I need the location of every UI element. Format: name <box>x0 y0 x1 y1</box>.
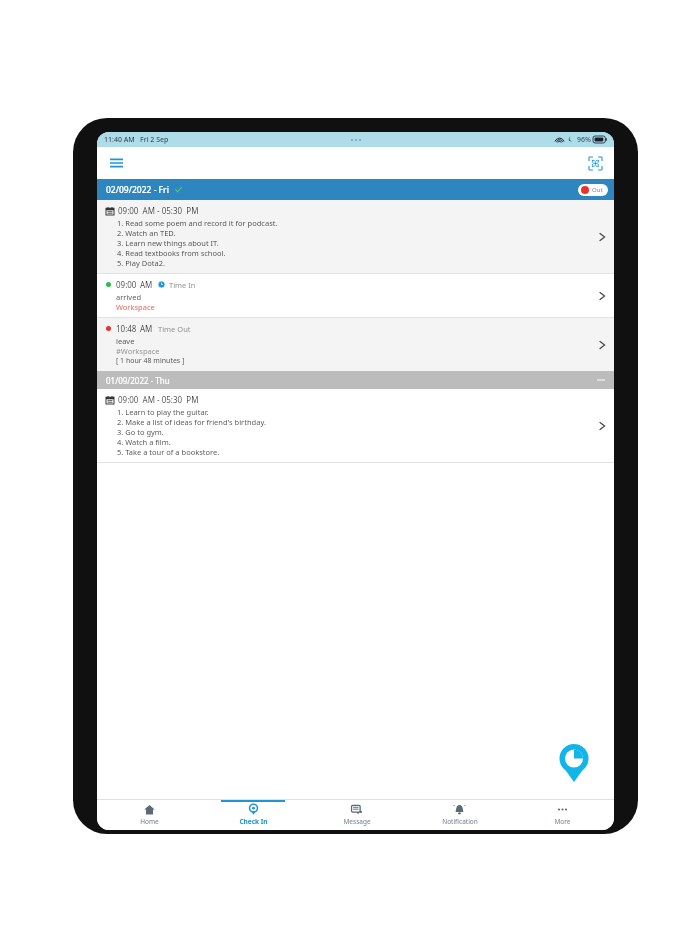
staticText: 4. Watch a film. <box>117 437 171 447</box>
button[interactable]: 09:00 <box>97 274 614 317</box>
staticText: 02/09/2022 - Fri <box>106 184 169 196</box>
staticText: 11:40 AM <box>104 135 135 145</box>
staticText: 01/09/2022 - Thu <box>106 375 170 386</box>
button[interactable]: Check In <box>201 800 305 830</box>
button[interactable]: More <box>511 800 614 830</box>
button[interactable]: Check in location <box>552 741 596 785</box>
staticText: 2. Make a list of ideas for friend's bir… <box>117 417 266 427</box>
staticText: leave <box>116 336 135 346</box>
staticText: Notification <box>442 817 478 826</box>
staticText: 5. Play Dota2. <box>117 258 165 268</box>
staticText: 09:00 AM - 05:30 PM <box>118 394 199 405</box>
staticText: 09:00 <box>116 279 137 290</box>
staticText: 1. Read some poem and record it for podc… <box>117 218 278 228</box>
button[interactable]: 02/09/2022 - Fri <box>97 179 614 200</box>
staticText: Home <box>140 817 159 826</box>
button[interactable]: 10:48 <box>97 318 614 371</box>
staticText: 10:48 <box>116 323 137 334</box>
staticText: AM <box>140 323 153 334</box>
staticText: [ 1 hour 48 minutes ] <box>116 356 185 366</box>
button[interactable]: 01/09/2022 - Thu <box>97 371 614 389</box>
staticText: 09:00 AM - 05:30 PM <box>118 205 199 216</box>
staticText: More <box>554 817 571 826</box>
staticText: 2. Watch an TED. <box>117 228 176 238</box>
staticText: #Workspace <box>116 346 160 356</box>
button[interactable]: Message <box>305 800 408 830</box>
staticText: Check In <box>239 817 268 826</box>
staticText: 96% <box>577 135 591 145</box>
button[interactable]: Out <box>578 184 608 196</box>
button[interactable]: Menu <box>105 152 127 174</box>
button[interactable]: Notification <box>408 800 511 830</box>
button[interactable]: 09:00 AM - 05:30 PM <box>97 389 614 462</box>
staticText: AM <box>140 279 153 290</box>
staticText: Time In <box>169 280 196 290</box>
staticText: Out <box>592 186 603 194</box>
button[interactable]: Scan QR code <box>584 152 606 174</box>
staticText: 4. Read textbooks from school. <box>117 248 226 258</box>
staticText: 5. Take a tour of a bookstore. <box>117 447 220 457</box>
staticText: Time Out <box>158 324 191 334</box>
button[interactable]: Home <box>97 800 201 830</box>
staticText: 1. Learn to play the guitar. <box>117 407 209 417</box>
button[interactable]: 09:00 AM - 05:30 PM <box>97 200 614 273</box>
staticText: Message <box>343 817 371 826</box>
staticText: Workspace <box>116 302 155 312</box>
staticText: Fri 2 Sep <box>140 135 169 145</box>
staticText: 3. Learn new things about IT. <box>117 238 219 248</box>
staticText: arrived <box>116 292 141 302</box>
staticText: 3. Go to gym. <box>117 427 164 437</box>
